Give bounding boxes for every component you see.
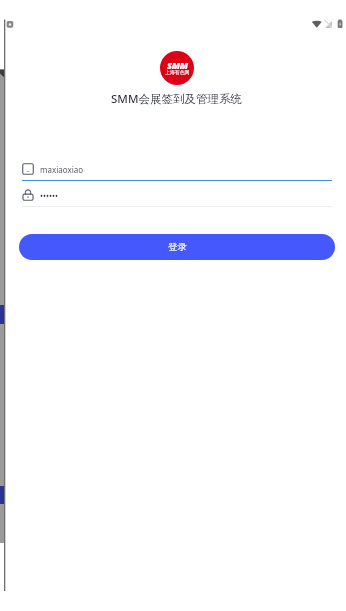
staticText: maxiaoxiao — [40, 164, 84, 175]
button[interactable]: Password — [22, 188, 332, 207]
staticText: 上海有色网 — [165, 69, 190, 75]
other: Account — [22, 163, 34, 175]
staticText: SMM — [167, 59, 188, 72]
button[interactable]: Account — [22, 162, 332, 181]
other: Password — [22, 189, 34, 201]
staticText: 登录 — [168, 241, 187, 253]
button[interactable]: 登录 — [19, 234, 335, 260]
staticText: SMM会展签到及管理系统 — [111, 91, 242, 107]
staticText: •••••• — [40, 190, 59, 201]
